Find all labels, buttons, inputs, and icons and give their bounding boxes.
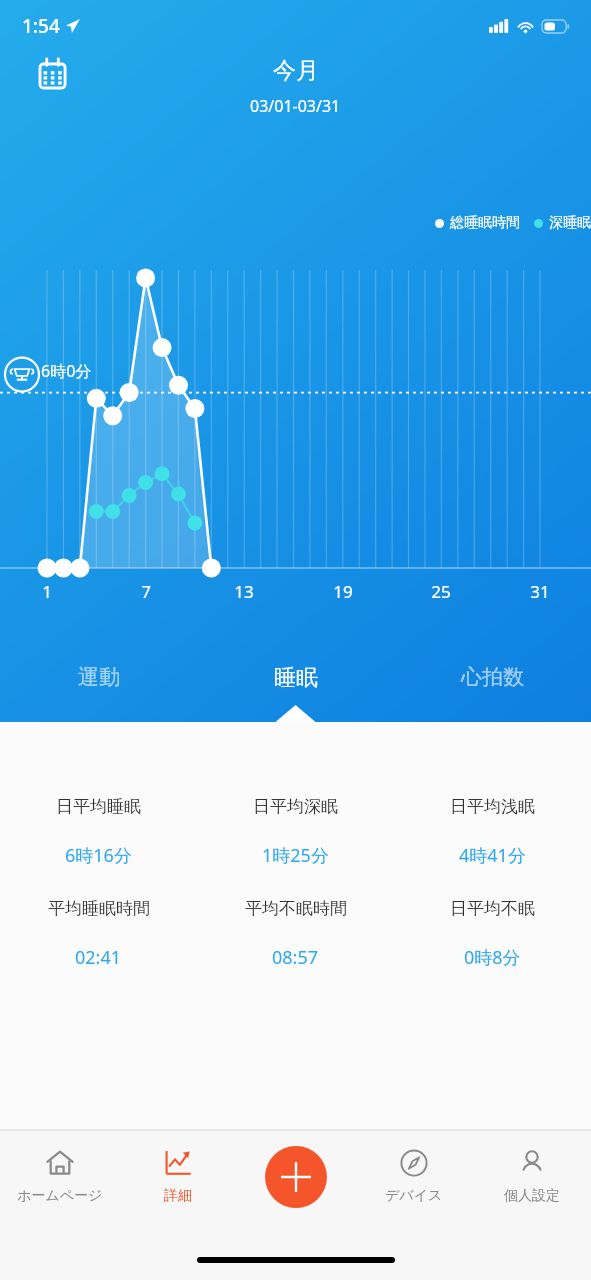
- staticText: 日平均浅眠: [450, 796, 535, 817]
- staticText: 運動: [78, 664, 120, 690]
- staticText: 13: [224, 580, 264, 603]
- staticText: 25: [421, 580, 461, 603]
- staticText: 平均睡眠時間: [48, 898, 150, 919]
- staticText: 19: [323, 580, 363, 603]
- staticText: 02:41: [75, 945, 122, 970]
- staticText: 個人設定: [504, 1187, 560, 1205]
- staticText: ホームページ: [17, 1187, 103, 1205]
- staticText: 1: [27, 580, 67, 603]
- staticText: デバイス: [385, 1187, 443, 1205]
- button[interactable]: 睡眠: [197, 640, 394, 692]
- button[interactable]: 個人設定: [473, 1130, 591, 1205]
- staticText: 4時41分: [459, 843, 526, 868]
- staticText: 深睡眠: [549, 214, 591, 232]
- button[interactable]: デバイス: [355, 1130, 473, 1205]
- staticText: 31: [520, 580, 560, 603]
- staticText: 今月: [273, 56, 319, 85]
- button[interactable]: 心拍数: [394, 640, 591, 690]
- button[interactable]: Add: [265, 1146, 327, 1208]
- staticText: 1時25分: [262, 843, 329, 868]
- staticText: 03/01-03/31: [250, 95, 341, 117]
- staticText: 総睡眠時間: [450, 214, 520, 232]
- button[interactable]: 詳細: [119, 1130, 237, 1205]
- staticText: 0時8分: [464, 945, 521, 970]
- staticText: 日平均睡眠: [56, 796, 141, 817]
- staticText: 6時16分: [65, 843, 132, 868]
- button[interactable]: 運動: [0, 640, 197, 690]
- button[interactable]: Calendar: [40, 56, 80, 96]
- staticText: 08:57: [272, 945, 319, 970]
- staticText: 詳細: [164, 1187, 192, 1205]
- staticText: 1:54: [22, 13, 60, 39]
- staticText: 睡眠: [274, 664, 318, 692]
- button[interactable]: ホームページ: [0, 1130, 119, 1205]
- staticText: 日平均深眠: [253, 796, 338, 817]
- staticText: 平均不眠時間: [245, 898, 347, 919]
- staticText: 6時0分: [41, 360, 92, 382]
- staticText: 心拍数: [461, 664, 524, 690]
- staticText: 7: [126, 580, 166, 603]
- staticText: 日平均不眠: [450, 898, 535, 919]
